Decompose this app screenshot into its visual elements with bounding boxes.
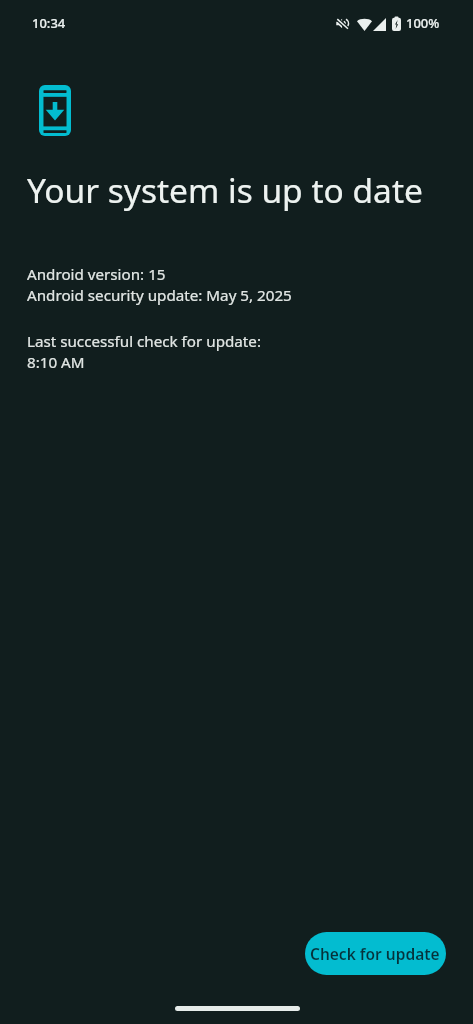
other: Wi-Fi [357, 18, 372, 31]
staticText: 8:10 AM [27, 352, 85, 373]
button[interactable]: Check for update [305, 932, 446, 975]
staticText: Last successful check for update: [27, 331, 261, 352]
other: Ringer silent [336, 18, 349, 29]
other: Cellular signal [373, 18, 386, 31]
other: System update [39, 85, 71, 136]
other: Battery 100 percent, charging [392, 16, 401, 31]
staticText: 100% [406, 14, 440, 32]
staticText: Android version: 15 [27, 264, 166, 285]
staticText: Check for update [310, 943, 440, 964]
staticText: Android security update: May 5, 2025 [27, 285, 292, 306]
staticText: 10:34 [32, 14, 66, 32]
staticText: Your system is up to date [27, 167, 423, 213]
